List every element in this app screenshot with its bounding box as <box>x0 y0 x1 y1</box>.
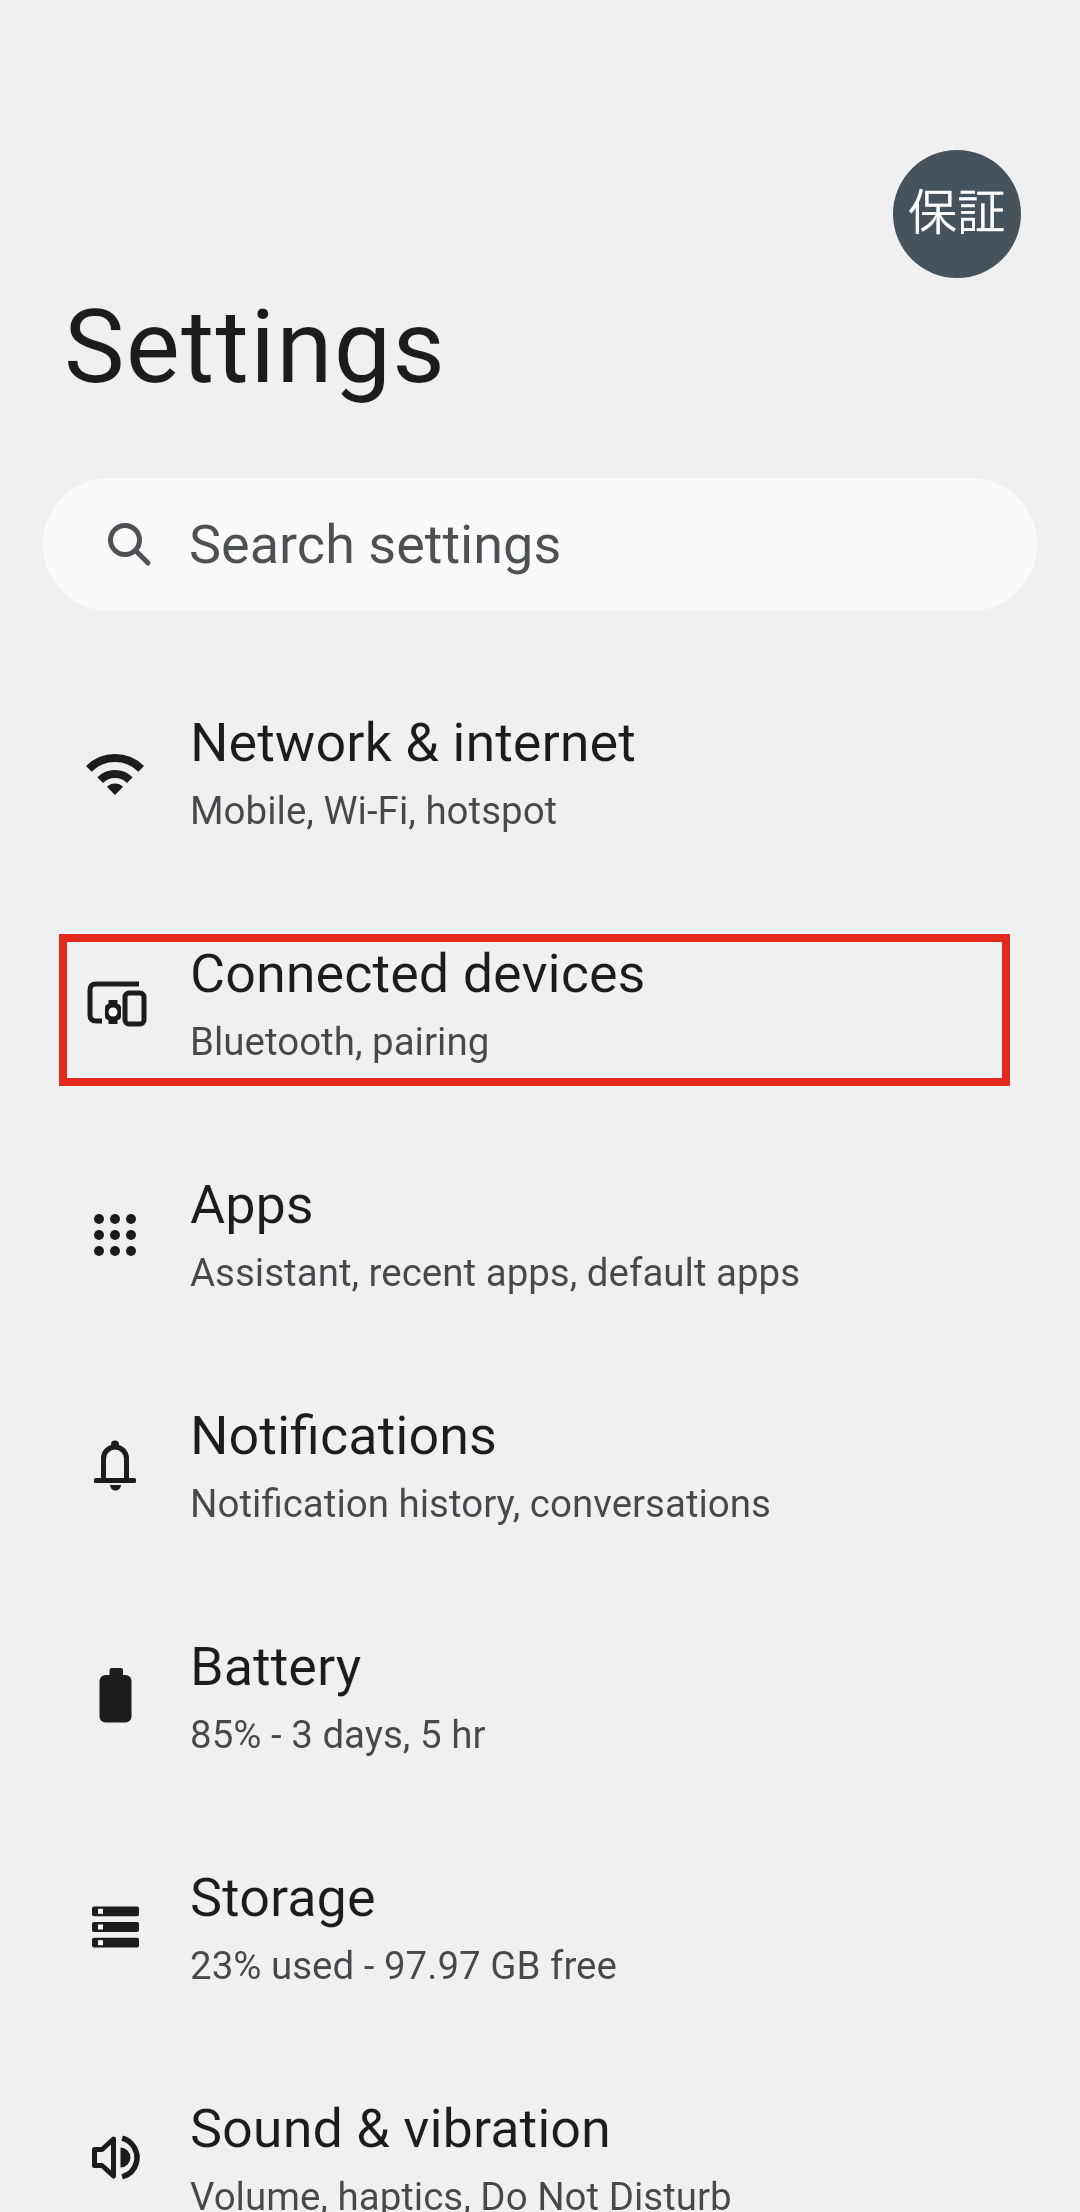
button[interactable]: Sound & vibration <box>0 2042 1080 2212</box>
button[interactable]: Battery <box>0 1580 1080 1811</box>
staticText: Sound & vibration <box>190 2097 611 2160</box>
staticText: Apps <box>190 1173 314 1236</box>
staticText: Notifications <box>190 1404 497 1467</box>
button[interactable]: Network & internet <box>0 656 1080 887</box>
staticText: Settings <box>64 287 447 407</box>
staticText: Assistant, recent apps, default apps <box>190 1250 801 1295</box>
button[interactable]: 保証 <box>893 150 1021 278</box>
staticText: Connected devices <box>190 942 646 1005</box>
staticText: 23% used - 97.97 GB free <box>190 1943 617 1988</box>
staticText: Battery <box>190 1635 362 1698</box>
staticText: Notification history, conversations <box>190 1481 771 1526</box>
button[interactable]: Notifications <box>0 1349 1080 1580</box>
button[interactable]: Search settings <box>43 478 1037 611</box>
staticText: Mobile, Wi-Fi, hotspot <box>190 788 558 833</box>
staticText: 85% - 3 days, 5 hr <box>190 1712 486 1757</box>
staticText: Search settings <box>189 513 562 576</box>
button[interactable]: Connected devices <box>0 887 1080 1118</box>
staticText: Network & internet <box>190 711 636 774</box>
staticText: Volume, haptics, Do Not Disturb <box>190 2174 732 2212</box>
button[interactable]: Storage <box>0 1811 1080 2042</box>
staticText: 保証 <box>908 178 1007 251</box>
staticText: Storage <box>190 1866 376 1929</box>
staticText: Bluetooth, pairing <box>190 1019 490 1064</box>
button[interactable]: Apps <box>0 1118 1080 1349</box>
